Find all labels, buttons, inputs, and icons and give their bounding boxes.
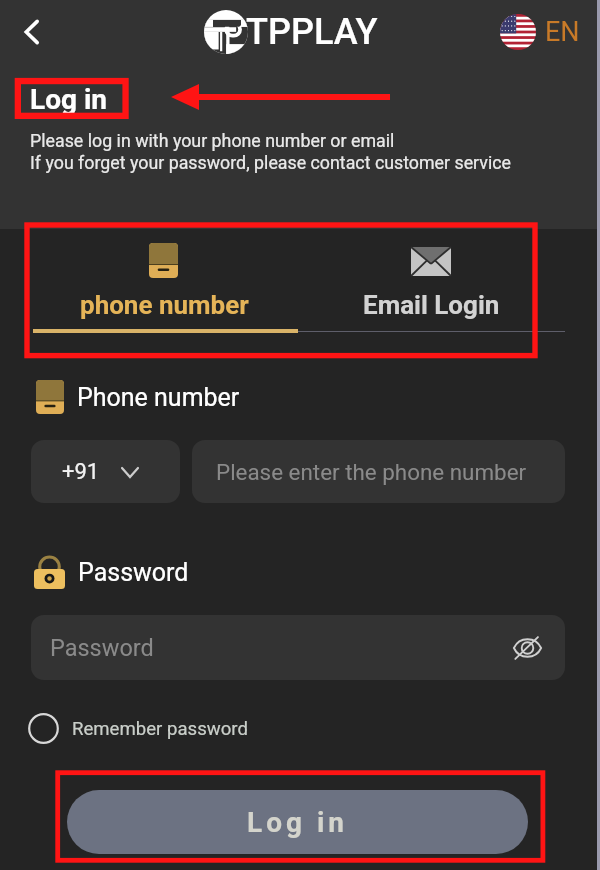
staticText: +91 xyxy=(62,459,100,485)
staticText: Please log in with your phone number or … xyxy=(30,130,395,151)
staticText: Log in xyxy=(247,806,349,839)
staticText: Password xyxy=(50,634,154,662)
button[interactable]: Please enter the phone number xyxy=(192,440,565,503)
staticText: Log in xyxy=(30,83,108,116)
button[interactable]: Show password xyxy=(505,626,549,670)
staticText: EN xyxy=(545,16,580,48)
button[interactable]: EN xyxy=(500,14,580,50)
staticText: If you forget your password, please cont… xyxy=(30,152,511,173)
button[interactable]: Log in xyxy=(67,790,528,854)
staticText: phone number xyxy=(80,290,249,320)
staticText: Phone number xyxy=(77,383,240,412)
staticText: Remember password xyxy=(72,718,248,740)
staticText: TPPLAY xyxy=(246,11,378,53)
button[interactable] xyxy=(33,230,298,333)
button[interactable]: Remember password xyxy=(28,713,248,744)
button[interactable] xyxy=(298,230,565,333)
button[interactable]: Back xyxy=(11,11,52,52)
button[interactable]: +91 xyxy=(31,440,180,503)
staticText: Please enter the phone number xyxy=(216,459,527,485)
staticText: Email Login xyxy=(363,290,500,320)
staticText: Password xyxy=(78,558,189,587)
button[interactable]: Password xyxy=(31,615,565,680)
